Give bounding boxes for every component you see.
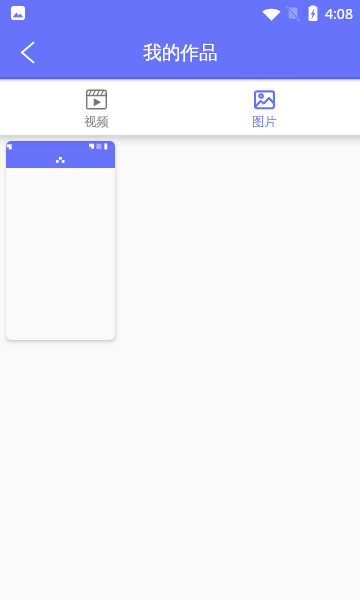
button[interactable] bbox=[6, 141, 115, 340]
staticText: 4:08 bbox=[325, 4, 353, 23]
button[interactable]: 图片 bbox=[229, 79, 299, 131]
staticText: 图片 bbox=[252, 114, 277, 130]
staticText: 视频 bbox=[84, 114, 109, 130]
button[interactable]: Back bbox=[0, 26, 50, 79]
staticText: 我的作品 bbox=[143, 41, 218, 64]
button[interactable]: 视频 bbox=[61, 79, 131, 131]
